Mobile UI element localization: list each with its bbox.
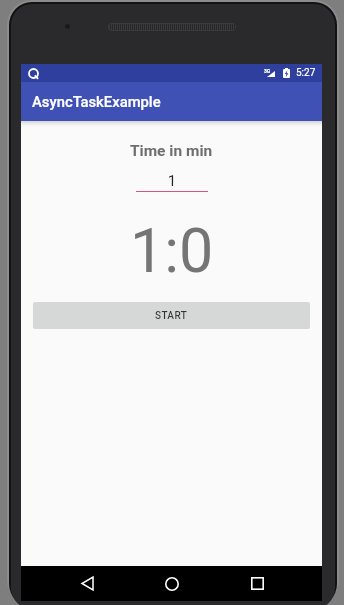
button[interactable]: Back	[65, 566, 109, 601]
button[interactable]: START	[33, 302, 310, 329]
button[interactable]: Recent apps	[235, 566, 279, 601]
staticText: 1	[136, 172, 208, 190]
staticText: AsyncTaskExample	[32, 93, 161, 110]
staticText: Time in min	[130, 142, 213, 160]
button[interactable]: Home	[150, 566, 194, 601]
staticText: START	[155, 310, 188, 322]
staticText: 3G	[264, 68, 271, 74]
staticText: 5:27	[296, 67, 316, 79]
staticText: 1:0	[130, 215, 214, 286]
